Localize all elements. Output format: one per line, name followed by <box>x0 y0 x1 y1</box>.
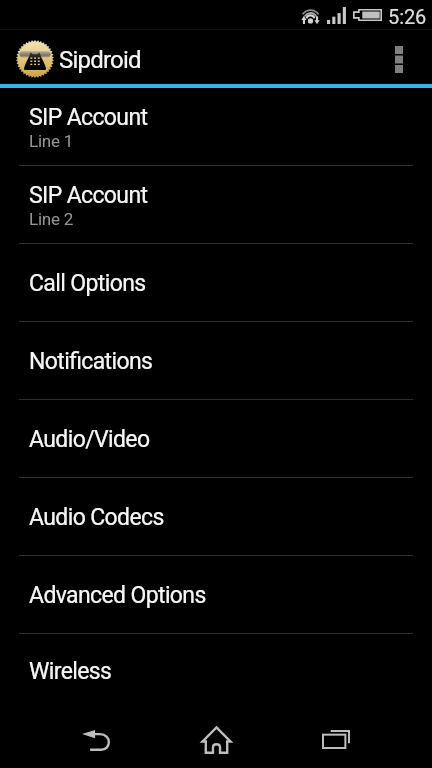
staticText: Call Options <box>29 270 146 297</box>
button[interactable]: Back <box>36 706 156 768</box>
staticText: SIP Account <box>29 104 148 131</box>
staticText: Notifications <box>29 348 153 375</box>
staticText: Line 1 <box>29 131 73 151</box>
button[interactable]: Advanced Options <box>0 556 432 633</box>
button[interactable]: Home <box>156 706 276 768</box>
staticText: 5:26 <box>388 5 427 28</box>
staticText: Line 2 <box>29 209 73 229</box>
staticText: Audio Codecs <box>29 504 164 531</box>
button[interactable]: Audio/Video <box>0 400 432 477</box>
button[interactable]: SIP Account <box>0 88 432 165</box>
button[interactable]: More options <box>365 30 432 84</box>
button[interactable]: Wireless <box>0 634 432 706</box>
staticText: SIP Account <box>29 182 148 209</box>
staticText: Sipdroid <box>59 46 141 74</box>
button[interactable]: Audio Codecs <box>0 478 432 555</box>
staticText: Advanced Options <box>29 582 206 609</box>
button[interactable]: SIP Account <box>0 166 432 243</box>
staticText: Audio/Video <box>29 426 150 453</box>
button[interactable]: Notifications <box>0 322 432 399</box>
button[interactable]: Call Options <box>0 244 432 321</box>
button[interactable]: Recent apps <box>276 706 396 768</box>
staticText: Wireless <box>29 658 112 685</box>
